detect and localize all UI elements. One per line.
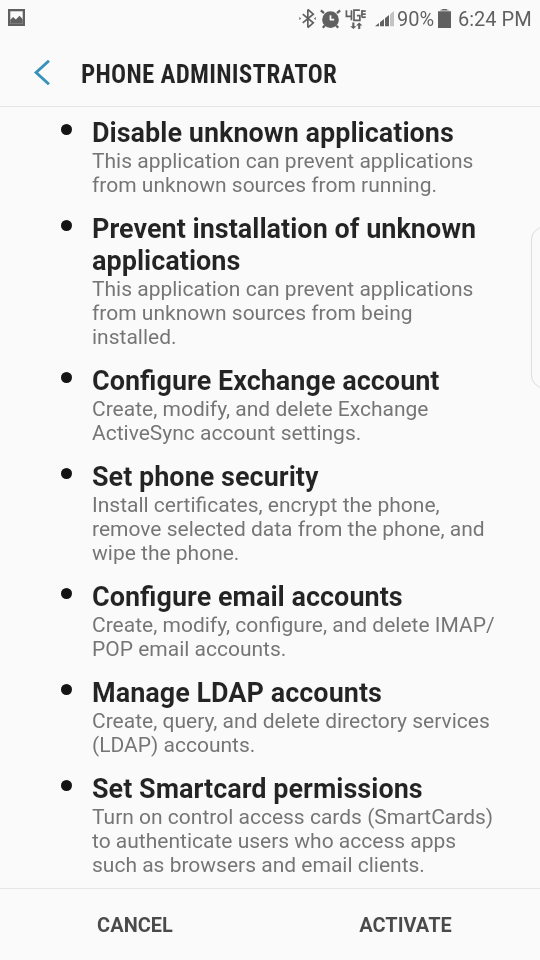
staticText: This application can prevent application… (92, 277, 502, 349)
staticText: Create, modify, and delete Exchange Acti… (92, 397, 502, 445)
button[interactable]: CANCEL (0, 889, 270, 960)
staticText: Configure email accounts (92, 581, 403, 613)
staticText: Set phone security (92, 461, 319, 493)
staticText: Create, query, and delete directory serv… (92, 709, 502, 757)
button[interactable]: Back (18, 37, 65, 106)
staticText: ACTIVATE (359, 913, 452, 936)
staticText: Configure Exchange account (92, 365, 440, 397)
staticText: Set Smartcard permissions (92, 773, 423, 805)
staticText: 6:24 PM (458, 7, 532, 30)
staticText: This application can prevent application… (92, 149, 502, 197)
staticText: Prevent installation of unknown applicat… (92, 213, 502, 277)
staticText: Disable unknown applications (92, 117, 454, 149)
button[interactable]: ACTIVATE (270, 889, 540, 960)
staticText: CANCEL (97, 913, 173, 936)
staticText: Manage LDAP accounts (92, 677, 382, 709)
staticText: Turn on control access cards (SmartCards… (92, 805, 502, 872)
staticText: PHONE ADMINISTRATOR (81, 60, 338, 89)
staticText: 90% (397, 7, 435, 30)
staticText: Install certificates, encrypt the phone,… (92, 493, 502, 565)
staticText: Create, modify, configure, and delete IM… (92, 613, 502, 661)
